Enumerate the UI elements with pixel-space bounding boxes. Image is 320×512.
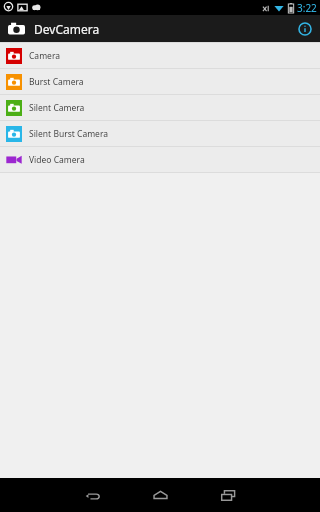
button[interactable]: Burst Camera [0,69,320,94]
staticText: Burst Camera [29,76,84,88]
staticText: Silent Burst Camera [29,128,109,140]
button[interactable]: Silent Camera [0,95,320,120]
button[interactable]: About [292,16,318,42]
button[interactable]: Back [61,478,123,512]
button[interactable]: Video Camera [0,147,320,172]
staticText: Silent Camera [29,102,85,114]
staticText: DevCamera [34,21,100,37]
button[interactable]: Recents [197,478,259,512]
button[interactable]: Home [129,478,191,512]
staticText: Camera [29,50,60,62]
button[interactable]: Camera [0,43,320,68]
button[interactable]: Silent Burst Camera [0,121,320,146]
staticText: 3:22 [297,1,317,15]
staticText: Video Camera [29,154,85,166]
